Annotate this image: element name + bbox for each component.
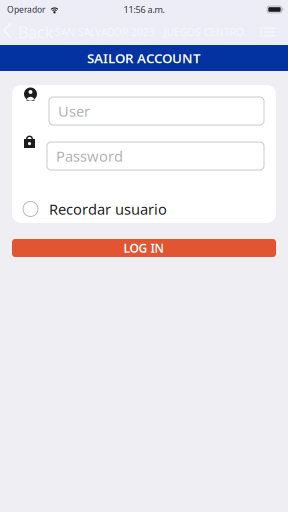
staticText: Password [56,146,123,166]
button[interactable]: LOG IN [12,239,276,257]
staticText: Operador [7,4,46,15]
staticText: User [58,101,90,121]
staticText: Recordar usuario [49,199,167,219]
staticText: LOG IN [123,240,164,256]
button[interactable]: Recordar usuario [12,199,276,219]
staticText: 11:56 a.m. [123,3,164,15]
staticText: SAILOR ACCOUNT [87,49,201,67]
